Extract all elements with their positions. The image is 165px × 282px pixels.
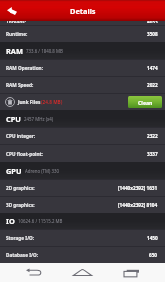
staticText: CPU [6,114,21,124]
button[interactable]: Junk Files [0,93,165,110]
staticText: Threads: [6,21,26,23]
staticText: Clean [138,99,153,106]
staticText: CPU float-point: [6,151,43,157]
staticText: 733.6 / 1840.8 MB [26,48,63,54]
staticText: 3D graphics: [6,202,35,208]
staticText: 2022 [147,82,158,88]
staticText: Database I/O: [6,252,39,258]
button[interactable]: Home [55,263,110,282]
staticText: 3508 [147,31,158,37]
staticText: GPU [6,166,22,176]
staticText: 1474 [147,65,158,71]
staticText: 1450 [147,235,158,241]
button[interactable]: CPU float-point: [0,144,165,162]
button[interactable]: Back [0,0,24,21]
button[interactable]: GPU [0,162,165,179]
button[interactable]: Recent apps [110,263,165,282]
button[interactable]: Clean [128,96,162,108]
staticText: Adreno (TM) 330 [25,168,59,174]
staticText: CPU integer: [6,133,36,139]
staticText: 2322 [147,133,158,139]
staticText: Storage I/O: [6,235,35,241]
staticText: (24.8 MB) [41,99,63,105]
staticText: 4033 [147,21,158,23]
button[interactable]: Database I/O: [0,246,165,263]
staticText: [1440x2392] 8104 [118,202,158,208]
staticText: Junk Files [18,99,41,105]
button[interactable]: 2D graphics: [0,179,165,196]
staticText: IO [6,216,15,226]
button[interactable]: Runtime: [0,25,165,42]
button[interactable]: 3D graphics: [0,196,165,213]
button[interactable]: RAM [0,42,165,59]
button[interactable]: Storage I/O: [0,229,165,246]
button[interactable]: Back [0,263,55,282]
staticText: Runtime: [6,31,28,37]
staticText: RAM Operation: [6,65,43,71]
button[interactable]: CPU integer: [0,127,165,144]
button[interactable]: RAM Operation: [0,59,165,76]
button[interactable]: IO [0,213,165,229]
button[interactable]: CPU [0,110,165,127]
staticText: 3337 [147,151,158,157]
staticText: RAM [6,46,23,56]
staticText: [1440x2392] 1631 [118,185,158,191]
staticText: 650 [149,252,158,258]
staticText: 10624.6 / 11515.2 MB [18,218,63,224]
staticText: Details [70,6,96,16]
button[interactable]: RAM Speed: [0,76,165,93]
staticText: RAM Speed: [6,82,34,88]
staticText: 2457 MHz (x4) [24,116,54,122]
staticText: 2D graphics: [6,185,35,191]
